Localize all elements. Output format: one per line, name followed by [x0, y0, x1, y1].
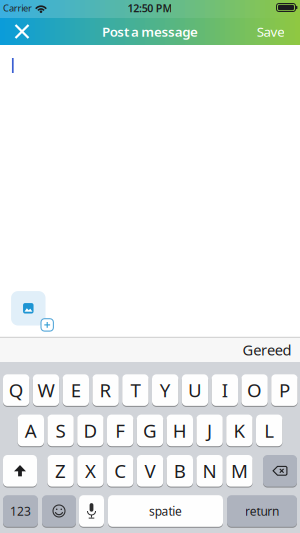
button[interactable]: I	[212, 374, 238, 406]
button[interactable]: spatie	[108, 495, 223, 527]
staticText: Q	[9, 378, 24, 402]
button[interactable]: Emoji	[42, 495, 76, 527]
button[interactable]: A	[18, 414, 44, 447]
staticText: 12:50 PM	[127, 1, 172, 15]
staticText: R	[100, 378, 112, 402]
staticText: Save	[257, 23, 285, 40]
staticText: X	[85, 458, 96, 483]
button[interactable]: R	[92, 374, 119, 406]
button[interactable]: Z	[47, 454, 74, 487]
button[interactable]: E	[63, 374, 89, 406]
button[interactable]: Save	[249, 18, 293, 45]
button[interactable]: D	[77, 414, 104, 447]
button[interactable]: Dictate	[79, 495, 104, 527]
button[interactable]: J	[196, 414, 223, 447]
button[interactable]: Attached photo	[11, 291, 46, 326]
button[interactable]: Numbers	[3, 495, 38, 527]
staticText: U	[188, 378, 202, 402]
button[interactable]: S	[47, 414, 74, 447]
staticText: Gereed	[242, 340, 291, 359]
staticText: L	[264, 418, 274, 443]
button[interactable]: N	[196, 454, 223, 487]
button[interactable]: W	[33, 374, 59, 406]
button[interactable]: P	[271, 374, 298, 406]
button[interactable]: B	[167, 454, 193, 487]
button[interactable]: C	[107, 454, 133, 487]
staticText: E	[71, 378, 81, 402]
button[interactable]: Y	[152, 374, 178, 406]
staticText: S	[56, 418, 66, 443]
staticText: P	[279, 378, 290, 402]
button[interactable]: K	[226, 414, 253, 447]
staticText: C	[114, 458, 126, 483]
button[interactable]: F	[107, 414, 133, 447]
staticText: D	[83, 418, 97, 443]
staticText: Z	[55, 458, 66, 483]
staticText: W	[37, 378, 54, 402]
staticText: Carrier	[3, 2, 32, 14]
button[interactable]: Add photo	[41, 319, 53, 331]
staticText: V	[144, 458, 155, 483]
staticText: T	[130, 378, 140, 402]
button[interactable]: U	[182, 374, 208, 406]
staticText: F	[115, 418, 125, 443]
button[interactable]: Delete	[263, 454, 297, 487]
staticText: B	[174, 458, 186, 483]
button[interactable]: Close	[15, 24, 29, 38]
button[interactable]: T	[122, 374, 149, 406]
button[interactable]: M	[226, 454, 253, 487]
button[interactable]: V	[137, 454, 163, 487]
staticText: A	[25, 418, 37, 443]
staticText: M	[231, 458, 248, 483]
staticText: G	[143, 418, 157, 443]
staticText: H	[173, 418, 187, 443]
button[interactable]: Shift	[3, 454, 37, 487]
staticText: K	[233, 418, 245, 443]
staticText: Post a message	[102, 23, 198, 40]
button[interactable]: return	[227, 495, 297, 527]
button[interactable]: G	[137, 414, 163, 447]
staticText: O	[247, 378, 262, 402]
staticText: N	[203, 458, 217, 483]
button[interactable]: X	[77, 454, 104, 487]
staticText: I	[222, 378, 228, 402]
staticText: spatie	[149, 503, 182, 519]
button[interactable]: L	[256, 414, 282, 447]
button[interactable]: Gereed	[232, 337, 300, 362]
staticText: Y	[160, 378, 171, 402]
staticText: J	[207, 418, 212, 443]
staticText: 123	[10, 503, 31, 519]
staticText: return	[245, 503, 279, 519]
button[interactable]: Q	[3, 374, 29, 406]
button[interactable]: O	[241, 374, 268, 406]
button[interactable]: H	[167, 414, 193, 447]
